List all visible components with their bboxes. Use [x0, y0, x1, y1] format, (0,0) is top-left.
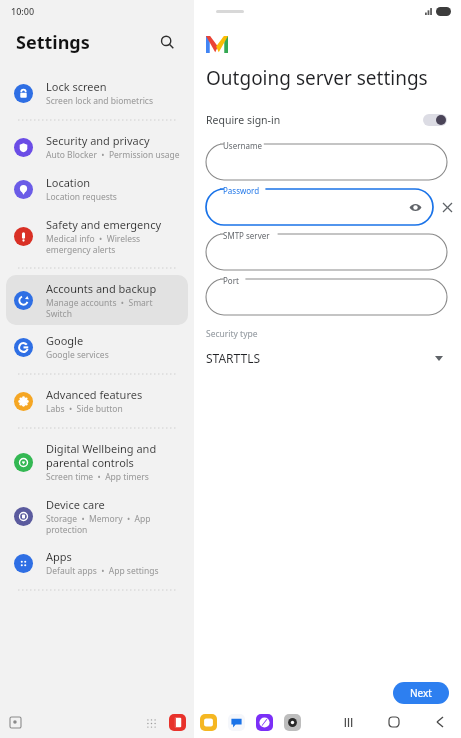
staticText: Security type — [206, 328, 258, 340]
staticText: Safety and emergency — [46, 217, 162, 232]
button[interactable]: Show password — [407, 199, 423, 215]
staticText: Storage • Memory • App protection — [46, 513, 180, 535]
staticText: Screen time • App timers — [46, 471, 149, 483]
staticText: Digital Wellbeing and parental controls — [46, 441, 180, 470]
button[interactable]: Advanced features — [6, 381, 188, 421]
staticText: Password — [223, 185, 260, 196]
staticText: 10:00 — [11, 5, 35, 17]
staticText: Google — [46, 333, 84, 348]
button[interactable]: Clear password — [433, 189, 461, 225]
staticText: Advanced features — [46, 387, 143, 402]
button[interactable]: STARTTLS — [194, 347, 461, 369]
button[interactable]: Safety and emergency — [6, 211, 188, 261]
staticText: Auto Blocker • Permission usage — [46, 149, 180, 161]
button[interactable]: Security and privacy — [6, 127, 188, 167]
staticText: Lock screen — [46, 79, 107, 94]
staticText: Next — [410, 686, 432, 700]
button[interactable]: Lock screen — [6, 73, 188, 113]
button[interactable]: All apps — [144, 716, 158, 730]
button[interactable]: Internet — [256, 714, 273, 731]
staticText: Apps — [46, 549, 72, 564]
staticText: Default apps • App settings — [46, 565, 159, 577]
button[interactable]: Recents — [8, 715, 22, 729]
button[interactable]: Accounts and backup — [6, 275, 188, 325]
staticText: Require sign-in — [206, 113, 281, 127]
staticText: Manage accounts • Smart Switch — [46, 297, 180, 319]
staticText: Security and privacy — [46, 133, 150, 148]
button[interactable]: Samsung Notes — [169, 714, 186, 731]
staticText: Accounts and backup — [46, 281, 157, 296]
staticText: STARTTLS — [206, 350, 261, 366]
button[interactable]: Next — [393, 682, 449, 704]
staticText: Screen lock and biometrics — [46, 95, 153, 107]
button[interactable]: Camera — [284, 714, 301, 731]
staticText: SMTP server — [223, 230, 270, 241]
staticText: Google services — [46, 349, 109, 361]
staticText: Port — [223, 275, 239, 286]
button[interactable]: Location — [6, 169, 188, 209]
staticText: Location — [46, 175, 91, 190]
button[interactable]: Apps — [6, 543, 188, 583]
button[interactable]: Device care — [6, 491, 188, 541]
button[interactable]: Recents — [339, 713, 357, 731]
staticText: Settings — [16, 30, 90, 55]
staticText: Location requests — [46, 191, 117, 203]
button[interactable]: Back — [431, 713, 449, 731]
button[interactable]: Messages — [228, 714, 245, 731]
staticText: Device care — [46, 497, 105, 512]
button[interactable]: Digital Wellbeing and parental controls — [6, 435, 188, 489]
button[interactable]: Search — [154, 29, 180, 55]
button[interactable]: Require sign-in — [194, 107, 461, 133]
staticText: Medical info • Wireless emergency alerts — [46, 233, 180, 255]
staticText: Username — [223, 140, 262, 151]
staticText: Outgoing server settings — [206, 65, 428, 91]
button[interactable]: Require sign-in toggle — [423, 114, 447, 126]
staticText: Labs • Side button — [46, 403, 123, 415]
button[interactable]: Home — [385, 713, 403, 731]
button[interactable]: Gallery — [200, 714, 217, 731]
button[interactable]: Google — [6, 327, 188, 367]
